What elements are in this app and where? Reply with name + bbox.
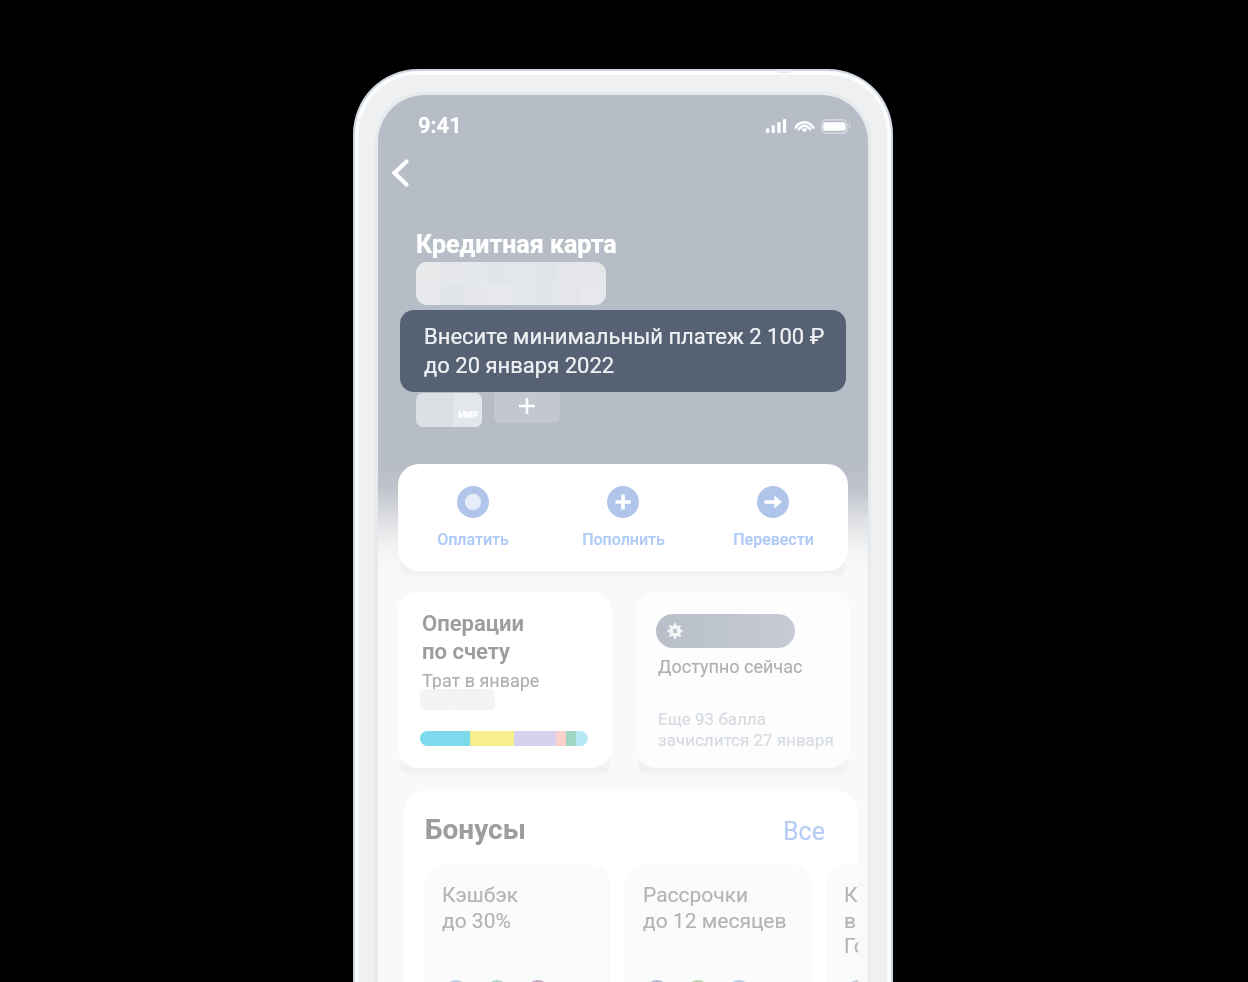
staticText: Операции по счету xyxy=(422,611,525,665)
button[interactable]: Пополнить xyxy=(548,464,698,571)
staticText: Оплатить xyxy=(437,530,509,549)
staticText: Бонусы xyxy=(425,813,526,846)
staticText: 9:41 xyxy=(418,113,462,139)
button[interactable]: Все xyxy=(783,817,825,846)
staticText: Кэшбэк до 30% xyxy=(442,883,519,933)
button[interactable]: Операции по счету xyxy=(397,592,612,768)
staticText: Кэшбэк в новом Году xyxy=(844,883,858,958)
staticText: Все xyxy=(783,817,825,846)
button[interactable]: Back xyxy=(378,151,422,195)
button[interactable]: Кэшбэк до 30% xyxy=(424,865,610,982)
staticText: Перевести xyxy=(733,530,814,549)
button[interactable]: Кэшбэк в новом Году xyxy=(826,865,858,982)
staticText: Внесите минимальный платеж 2 100 ₽ до 20… xyxy=(424,324,825,378)
button[interactable]: Рассрочки до 12 месяцев xyxy=(625,865,811,982)
staticText: Трат в январе xyxy=(422,670,540,691)
staticText: Еще 93 балла зачислится 27 января xyxy=(658,709,834,750)
button[interactable]: Доступно сейчас xyxy=(636,592,850,768)
staticText: Доступно сейчас xyxy=(658,656,803,677)
staticText: МИР xyxy=(458,410,478,421)
button[interactable]: Оплатить xyxy=(398,464,548,571)
button[interactable]: Add card xyxy=(494,389,560,423)
staticText: Рассрочки до 12 месяцев xyxy=(643,883,787,933)
button[interactable]: MIR card xyxy=(416,393,482,427)
staticText: Пополнить xyxy=(582,530,665,549)
button[interactable]: Перевести xyxy=(698,464,848,571)
staticText: Кредитная карта xyxy=(416,230,617,259)
button[interactable]: Внесите минимальный платеж 2 100 ₽ до 20… xyxy=(400,310,846,392)
